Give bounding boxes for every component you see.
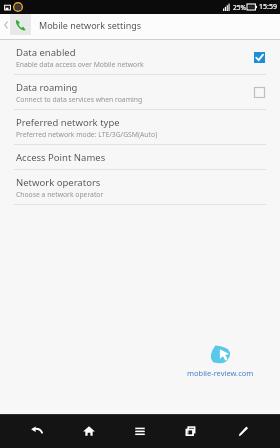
button[interactable]: Edit (223, 416, 263, 446)
staticText: Data enabled (16, 46, 76, 59)
staticText: 15:59 (259, 2, 277, 12)
staticText: Preferred network mode: LTE/3G/GSM(Auto) (16, 130, 158, 139)
staticText: mobile-review.com (187, 368, 254, 378)
staticText: Mobile network settings (39, 19, 142, 31)
button[interactable]: Checked (250, 48, 268, 66)
button[interactable]: Unchecked (250, 83, 268, 101)
button[interactable]: Recent apps (171, 416, 211, 446)
button[interactable]: Data roaming (0, 75, 280, 109)
button[interactable]: Network operators (0, 170, 280, 204)
button[interactable]: Home (69, 416, 109, 446)
button[interactable]: Back (17, 416, 57, 446)
staticText: Data roaming (16, 81, 78, 94)
staticText: Access Point Names (16, 151, 106, 164)
staticText: Choose a network operator (16, 190, 104, 199)
button[interactable]: Data enabled (0, 40, 280, 74)
staticText: Preferred network type (16, 116, 120, 129)
button[interactable]: Back (2, 19, 10, 31)
staticText: Connect to data services when roaming (16, 95, 143, 104)
staticText: Enable data access over Mobile network (16, 60, 144, 69)
button[interactable]: Menu (120, 416, 160, 446)
button[interactable]: Access Point Names (0, 145, 280, 169)
button[interactable]: Preferred network type (0, 110, 280, 144)
staticText: 25% (233, 3, 246, 12)
staticText: Network operators (16, 176, 101, 189)
